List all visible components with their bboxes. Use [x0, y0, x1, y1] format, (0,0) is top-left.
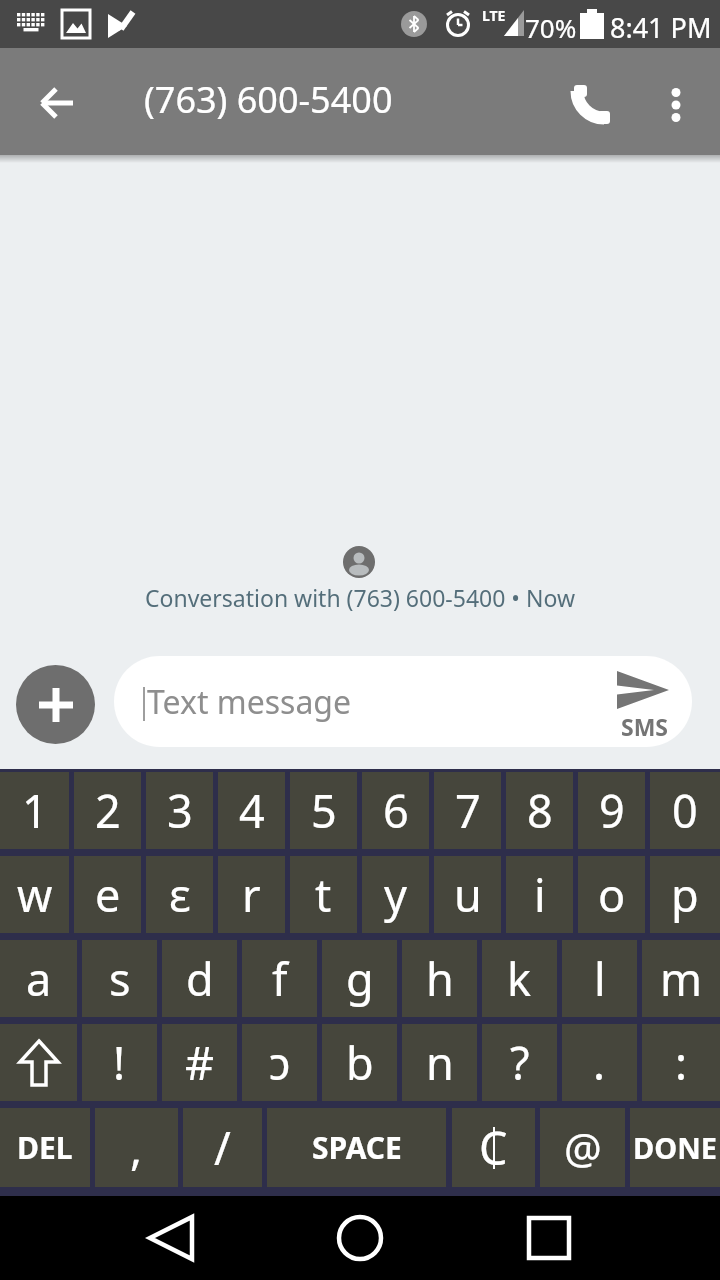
button[interactable]: / [183, 1108, 262, 1187]
staticText: # [185, 1032, 215, 1093]
staticText: e [95, 864, 121, 925]
staticText: 8:41 PM [610, 9, 712, 46]
button[interactable]: # [162, 1024, 237, 1101]
button[interactable]: k [482, 940, 557, 1017]
button[interactable]: l [562, 940, 637, 1017]
staticText: 6 [383, 780, 409, 841]
staticText: 70% [525, 10, 577, 45]
staticText: f [272, 948, 288, 1009]
button[interactable]: t [290, 856, 357, 933]
button[interactable]: d [162, 940, 237, 1017]
button[interactable]: i [506, 856, 573, 933]
staticText: ɛ [169, 864, 191, 925]
staticText: Text message [147, 680, 352, 724]
button[interactable]: : [642, 1024, 720, 1101]
staticText: m [660, 948, 703, 1009]
button[interactable]: @ [540, 1108, 625, 1187]
staticText: , [130, 1117, 143, 1178]
button[interactable] [648, 76, 704, 132]
staticText: g [346, 948, 374, 1009]
button[interactable]: ɛ [146, 856, 213, 933]
button[interactable]: ? [482, 1024, 557, 1101]
button[interactable]: s [82, 940, 157, 1017]
staticText: Conversation with (763) 600-5400 • Now [0, 582, 720, 613]
button[interactable]: 7 [434, 772, 501, 849]
button[interactable]: p [650, 856, 720, 933]
staticText: s [109, 948, 131, 1009]
button[interactable]: . [562, 1024, 637, 1101]
staticText: . [593, 1032, 606, 1093]
staticText: 0 [672, 780, 698, 841]
staticText: ɔ [269, 1032, 291, 1093]
button[interactable]: SPACE [267, 1108, 446, 1187]
staticText: h [426, 948, 454, 1009]
button[interactable]: b [322, 1024, 397, 1101]
staticText: w [17, 864, 53, 925]
button[interactable]: ɔ [242, 1024, 317, 1101]
staticText: k [507, 948, 532, 1009]
staticText: 8 [527, 780, 553, 841]
button[interactable]: f [242, 940, 317, 1017]
button[interactable]: Text message [114, 656, 692, 747]
staticText: 7 [455, 780, 481, 841]
button[interactable]: C [452, 1108, 535, 1187]
staticText: DEL [17, 1127, 73, 1168]
staticText: 5 [311, 780, 337, 841]
staticText: a [26, 948, 52, 1009]
button[interactable]: 4 [218, 772, 285, 849]
staticText: 4 [239, 780, 265, 841]
button[interactable]: DEL [0, 1108, 90, 1187]
button[interactable] [16, 665, 95, 744]
button[interactable]: m [642, 940, 720, 1017]
button[interactable]: e [74, 856, 141, 933]
button[interactable]: u [434, 856, 501, 933]
button[interactable] [504, 1196, 594, 1280]
button[interactable]: 5 [290, 772, 357, 849]
staticText: o [598, 864, 626, 925]
staticText: b [346, 1032, 374, 1093]
staticText: l [594, 948, 606, 1009]
button[interactable]: h [402, 940, 477, 1017]
button[interactable]: 3 [146, 772, 213, 849]
button[interactable]: o [578, 856, 645, 933]
button[interactable]: 2 [74, 772, 141, 849]
button[interactable]: 8 [506, 772, 573, 849]
button[interactable]: 6 [362, 772, 429, 849]
staticText: @ [564, 1119, 602, 1176]
button[interactable] [125, 1196, 215, 1280]
button[interactable]: , [95, 1108, 178, 1187]
button[interactable]: 9 [578, 772, 645, 849]
button[interactable]: 1 [0, 772, 69, 849]
button[interactable]: DONE [630, 1108, 720, 1187]
staticText: 3 [167, 780, 193, 841]
button[interactable]: a [0, 940, 77, 1017]
button[interactable]: y [362, 856, 429, 933]
staticText: ! [113, 1032, 126, 1093]
staticText: DONE [633, 1128, 717, 1167]
staticText: LTE [482, 6, 506, 25]
staticText: d [186, 948, 214, 1009]
button[interactable]: g [322, 940, 397, 1017]
button[interactable]: w [0, 856, 69, 933]
button[interactable]: ! [82, 1024, 157, 1101]
staticText: (763) 600-5400 [144, 75, 393, 124]
button[interactable] [315, 1196, 405, 1280]
button[interactable] [562, 73, 622, 135]
button[interactable]: 0 [650, 772, 720, 849]
staticText: ? [510, 1032, 530, 1093]
staticText: r [242, 864, 261, 925]
staticText: 9 [599, 780, 625, 841]
staticText: t [315, 864, 332, 925]
staticText: C [479, 1117, 508, 1178]
staticText: / [214, 1117, 231, 1178]
button[interactable] [22, 80, 92, 126]
staticText: SPACE [312, 1127, 402, 1168]
staticText: n [426, 1032, 454, 1093]
button[interactable] [0, 1024, 77, 1101]
button[interactable]: r [218, 856, 285, 933]
staticText: : [675, 1032, 688, 1093]
staticText: i [534, 864, 546, 925]
button[interactable]: n [402, 1024, 477, 1101]
staticText: u [454, 864, 482, 925]
staticText: 2 [95, 780, 121, 841]
